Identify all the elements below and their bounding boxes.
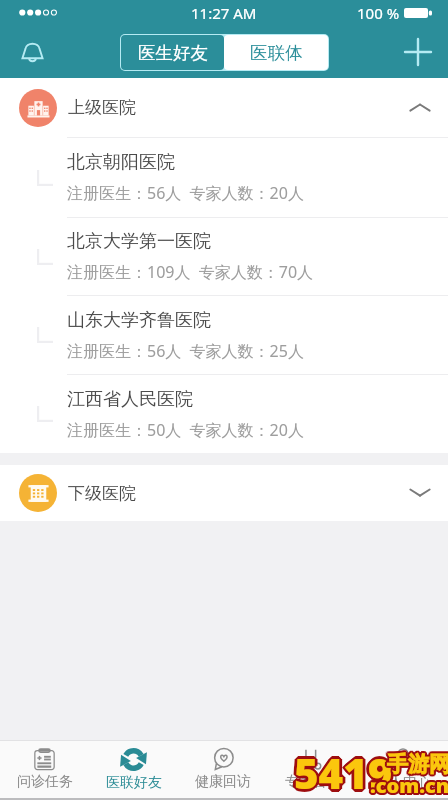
staticText: .com.cn [368, 771, 448, 798]
staticText: 健康回访 [195, 773, 251, 791]
staticText: 手游网 [387, 751, 448, 777]
staticText: .com.cn [368, 773, 448, 800]
button[interactable]: 问诊任务 [0, 741, 89, 798]
button[interactable]: 健康回访 [178, 741, 268, 798]
staticText: 5419 [297, 744, 396, 800]
staticText: 5419 [294, 747, 393, 800]
button[interactable]: 医联体 [224, 35, 328, 70]
staticText: 手游网 [385, 751, 448, 777]
button[interactable]: 下级医院 [0, 465, 448, 521]
staticText: 专家咨询 [285, 773, 341, 791]
staticText: 手游网 [385, 750, 448, 776]
staticText: 注册医生：50人 专家人数：20人 [67, 419, 304, 441]
staticText: 5419 [296, 743, 395, 800]
staticText: 手游网 [387, 749, 448, 775]
staticText: 下级医院 [68, 483, 136, 504]
button[interactable]: 北京大学第一医院 [0, 218, 448, 295]
staticText: 注册医生：56人 专家人数：25人 [67, 340, 304, 362]
staticText: 5419 [293, 742, 392, 799]
staticText: 上级医院 [68, 97, 136, 118]
staticText: 注册医生：56人 专家人数：20人 [67, 182, 304, 204]
staticText: 问诊任务 [17, 773, 73, 791]
staticText: 手游网 [386, 753, 448, 779]
staticText: 5419 [294, 744, 393, 800]
staticText: 北京朝阳医院 [67, 151, 175, 174]
button[interactable]: 北京朝阳医院 [0, 138, 448, 217]
staticText: .com.cn [372, 771, 448, 798]
staticText: .com.cn [368, 772, 448, 799]
staticText: 5419 [292, 743, 391, 800]
staticText: .com.cn [371, 770, 448, 797]
staticText: .com.cn [370, 774, 448, 800]
button[interactable]: 医生好友 [121, 35, 224, 70]
staticText: 5419 [295, 746, 394, 800]
staticText: 5419 [292, 745, 391, 800]
button[interactable]: 个人中心 [358, 741, 448, 798]
button[interactable]: 医联好友 [89, 741, 178, 798]
staticText: .com.cn [371, 774, 448, 800]
staticText: 手游网 [389, 750, 448, 776]
staticText: 手游网 [387, 753, 448, 779]
staticText: 医生好友 [138, 42, 208, 64]
button[interactable]: Add [394, 28, 442, 76]
staticText: 5419 [294, 741, 393, 798]
staticText: 11:27 AM [191, 3, 257, 23]
staticText: 北京大学第一医院 [67, 230, 211, 253]
button[interactable]: 山东大学齐鲁医院 [0, 296, 448, 374]
button[interactable]: 上级医院 [0, 78, 448, 137]
staticText: 手游网 [388, 749, 448, 775]
staticText: 手游网 [385, 752, 448, 778]
staticText: .com.cn [372, 773, 448, 800]
button[interactable]: 江西省人民医院 [0, 375, 448, 453]
staticText: 手游网 [389, 752, 448, 778]
staticText: 山东大学齐鲁医院 [67, 309, 211, 332]
staticText: 手游网 [388, 753, 448, 779]
staticText: .com.cn [372, 772, 448, 799]
staticText: 5419 [296, 745, 395, 800]
staticText: 江西省人民医院 [67, 388, 193, 411]
staticText: 100 % [357, 3, 400, 23]
button[interactable]: 专家咨询 [268, 741, 358, 798]
staticText: 5419 [293, 746, 392, 800]
staticText: 手游网 [386, 749, 448, 775]
staticText: .com.cn [370, 772, 448, 799]
button[interactable]: Notifications [8, 28, 56, 76]
staticText: 注册医生：109人 专家人数：70人 [67, 261, 314, 283]
staticText: 手游网 [389, 751, 448, 777]
staticText: 5419 [291, 744, 390, 800]
staticText: .com.cn [370, 770, 448, 797]
staticText: 5419 [295, 742, 394, 799]
staticText: 医联体 [250, 42, 303, 64]
staticText: 医联好友 [106, 774, 162, 792]
staticText: .com.cn [369, 774, 448, 800]
staticText: .com.cn [369, 770, 448, 797]
staticText: 个人中心 [375, 773, 431, 791]
